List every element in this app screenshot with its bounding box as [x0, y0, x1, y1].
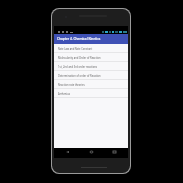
button[interactable]: Reaction rate theories — [54, 80, 128, 89]
button[interactable]: Molecularity and Order of Reaction — [54, 53, 128, 62]
staticText: Determination of order of Reaction — [58, 74, 101, 78]
button[interactable]: Back — [61, 148, 73, 156]
button[interactable]: Home — [85, 148, 97, 156]
staticText: Reaction rate theories — [58, 83, 85, 87]
button[interactable]: Chapter 4. Chemical Kinetics — [54, 34, 128, 44]
button[interactable]: Recent apps — [108, 148, 120, 156]
staticText: Arrhenius — [58, 92, 70, 96]
button[interactable]: Rate Law and Rate Constant — [54, 44, 128, 53]
button[interactable]: 1st, 2nd and 3rd order reactions — [54, 62, 128, 71]
staticText: Rate Law and Rate Constant — [58, 47, 93, 51]
button[interactable]: Arrhenius — [54, 89, 128, 98]
staticText: Molecularity and Order of Reaction — [58, 56, 101, 60]
button[interactable]: Determination of order of Reaction — [54, 71, 128, 80]
staticText: 1st, 2nd and 3rd order reactions — [58, 65, 98, 69]
staticText: Chapter 4. Chemical Kinetics — [57, 37, 101, 41]
